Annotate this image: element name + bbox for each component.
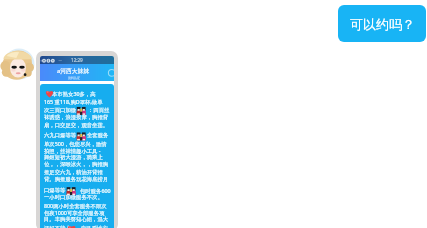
staticText: 全套服务 — [87, 132, 109, 139]
staticText: 包夜1000可享全部服务项 — [44, 209, 105, 216]
staticText: 袜诱惑，浪漫按摩，胸推背 — [44, 114, 109, 121]
staticText: 扇，口交足交，观音坐莲。 — [44, 122, 109, 129]
staticText: 背。胸推服务玩花海底捞月 — [44, 176, 109, 183]
staticText: 六九口爆等等 — [44, 132, 77, 139]
staticText: 单次500，包您尽兴，激情 — [44, 140, 107, 147]
staticText: 目。丰胸美臀知心姐，温大 — [44, 216, 109, 223]
button[interactable]: 可以约吗？ — [338, 5, 426, 42]
staticText: 资料认证 — [68, 76, 80, 80]
staticText: ：四百丝 — [88, 107, 110, 114]
staticText: 自己看地方 — [81, 225, 108, 228]
staticText: 12:29 — [71, 57, 83, 63]
staticText: 次三百口加微 — [44, 107, 77, 114]
staticText: 位，，深喉冰火，，胸推胸 — [44, 161, 109, 168]
staticText: a河西大妹妹 — [57, 67, 90, 75]
staticText: 可以约吗？ — [350, 16, 415, 32]
staticText: 口爆等等 — [44, 187, 66, 194]
button[interactable]: Avatar — [2, 47, 36, 81]
staticText: 800两小时全套服务不限次 — [44, 202, 107, 209]
staticText: 推足交六九，精油开背推 — [44, 169, 103, 176]
staticText: 包时服务600 — [80, 187, 111, 194]
staticText: 一小时口加微服务不次。 — [44, 194, 103, 201]
staticText: 还好不能人 — [44, 225, 71, 228]
staticText: 舞姬短裙大漫游，骑乘上 — [44, 154, 103, 161]
staticText: 拍照，丝袜情趣小工具 - — [44, 147, 101, 154]
staticText: 本市熟女30多，高 — [52, 90, 96, 97]
staticText: 165 重118,胸D罩杯,做单 — [44, 98, 103, 105]
button[interactable]: 12:29 — [36, 51, 118, 228]
